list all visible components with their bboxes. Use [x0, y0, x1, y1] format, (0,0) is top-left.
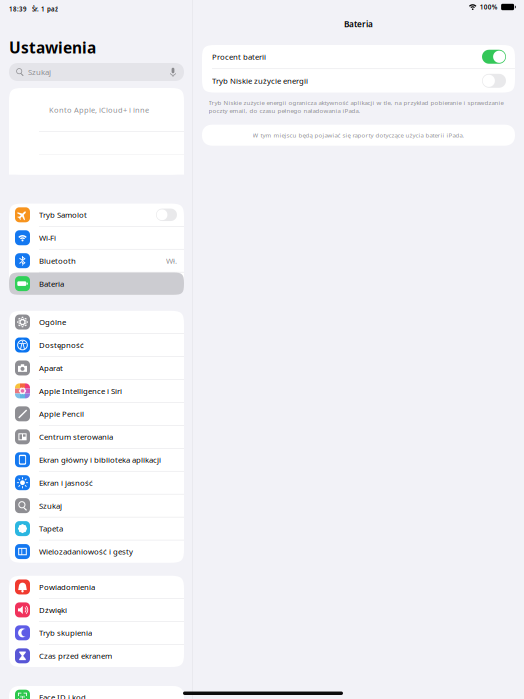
button[interactable]: Ekran główny i biblioteka aplikacji [9, 448, 184, 471]
staticText: Ekran i jasność [39, 478, 93, 488]
button[interactable]: Dźwięki [9, 599, 184, 621]
staticText: Aparat [39, 363, 63, 373]
staticText: Tryb Samolot [39, 210, 87, 220]
staticText: Ekran główny i biblioteka aplikacji [39, 455, 161, 465]
staticText: Wi-Fi [39, 233, 56, 243]
staticText: 100% [480, 3, 498, 11]
staticText: Konto Apple, iCloud+ i inne [49, 105, 149, 115]
button[interactable]: Centrum sterowania [9, 426, 184, 448]
button[interactable]: Procent baterii [202, 45, 515, 68]
button[interactable]: Aparat [9, 357, 184, 379]
staticText: Tryb Niskie zużycie energii ogranicza ak… [208, 98, 503, 115]
button[interactable]: Ogólne [9, 311, 184, 333]
staticText: Face ID i kod [39, 692, 86, 699]
staticText: Tryb Niskie zużycie energii [212, 76, 308, 86]
button[interactable]: Tryb skupienia [9, 622, 184, 644]
button[interactable]: Bluetooth [9, 249, 184, 272]
staticText: 18:39 [9, 5, 27, 13]
staticText: Śr. 1 paź [32, 5, 58, 13]
staticText: Tapeta [39, 523, 63, 534]
button[interactable]: Face ID i kod [9, 686, 184, 699]
button[interactable]: Szukaj [9, 63, 184, 81]
staticText: Bateria [39, 278, 64, 289]
staticText: Bateria [344, 18, 373, 29]
staticText: Tryb skupienia [39, 628, 92, 638]
button[interactable]: Tryb Niskie zużycie energii [202, 69, 515, 92]
staticText: Procent baterii [212, 52, 266, 62]
staticText: Centrum sterowania [39, 432, 113, 442]
staticText: Dźwięki [39, 605, 67, 615]
staticText: Bluetooth [39, 256, 76, 266]
button[interactable]: Czas przed ekranem [9, 645, 184, 667]
staticText: Apple Intelligence i Siri [39, 386, 122, 396]
button[interactable]: Dostępność [9, 334, 184, 356]
staticText: Ustawienia [9, 37, 96, 58]
button[interactable]: Szukaj [9, 494, 184, 517]
button[interactable]: Apple Intelligence i Siri [9, 380, 184, 402]
button[interactable]: Tapeta [9, 517, 184, 540]
button[interactable]: Powiadomienia [9, 576, 184, 598]
button[interactable]: Ekran i jasność [9, 471, 184, 494]
staticText: Apple Pencil [39, 409, 84, 419]
button[interactable]: Wi-Fi [9, 226, 184, 249]
staticText: Wielozadaniowość i gesty [39, 546, 133, 557]
button[interactable]: Konto Apple, iCloud+ i inne [9, 88, 184, 131]
staticText: Szukaj [39, 500, 62, 511]
staticText: Dostępność [39, 340, 84, 350]
staticText: Powiadomienia [39, 582, 95, 592]
staticText: Ogólne [39, 317, 66, 327]
button[interactable]: Tryb Samolot [9, 204, 184, 226]
staticText: Wł. [166, 256, 177, 266]
button[interactable]: Apple Pencil [9, 403, 184, 425]
staticText: Czas przed ekranem [39, 651, 112, 661]
button[interactable]: Wielozadaniowość i gesty [9, 540, 184, 563]
staticText: Szukaj [28, 67, 51, 77]
button[interactable]: Bateria [9, 272, 184, 295]
staticText: W tym miejscu będą pojawiać się raporty … [252, 131, 464, 139]
